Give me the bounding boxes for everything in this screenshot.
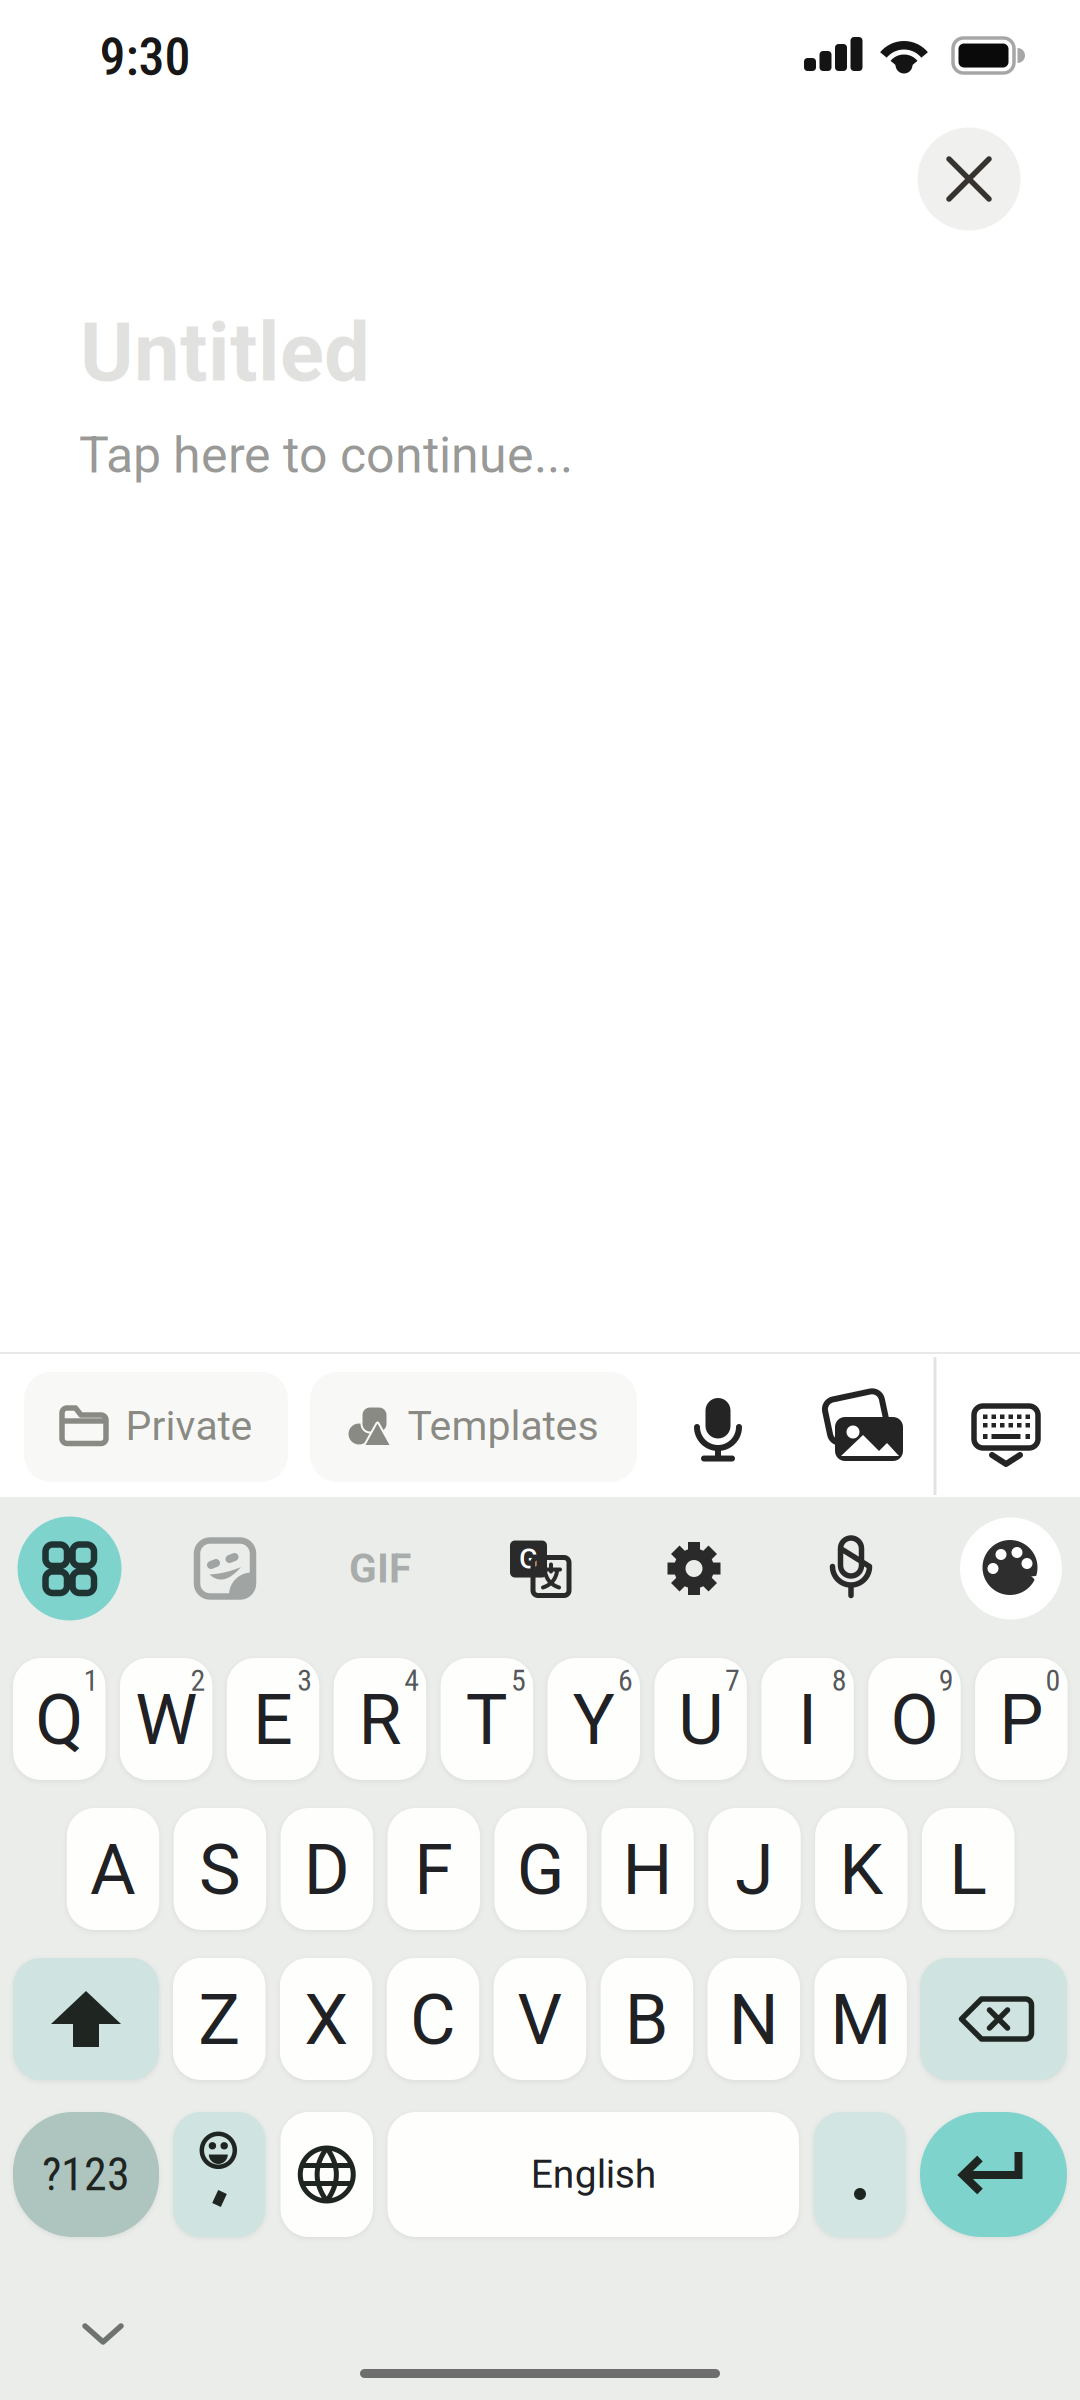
button[interactable]: S [174, 1808, 266, 1930]
button[interactable]: Z [173, 1958, 265, 2080]
button[interactable] [670, 1373, 766, 1483]
staticText: T [466, 1679, 508, 1761]
button[interactable] [920, 2112, 1067, 2237]
staticText: 0 [1046, 1663, 1061, 1698]
staticText: GIF [349, 1545, 411, 1592]
button[interactable]: X [280, 1958, 372, 2080]
staticText: A [90, 1829, 136, 1911]
button[interactable]: R [334, 1658, 426, 1780]
staticText: 3 [297, 1663, 312, 1698]
button[interactable] [956, 1381, 1056, 1491]
button[interactable] [280, 2112, 373, 2237]
staticText: Z [198, 1979, 240, 2061]
staticText: N [729, 1979, 779, 2061]
staticText: 1 [83, 1663, 98, 1698]
button[interactable]: U [654, 1658, 747, 1780]
staticText: M [830, 1979, 891, 2061]
button[interactable] [813, 2112, 906, 2237]
button[interactable] [814, 1378, 924, 1488]
button[interactable]: T [441, 1658, 533, 1780]
button[interactable]: C [387, 1958, 479, 2080]
button[interactable]: English [387, 2112, 799, 2237]
staticText: 8 [832, 1663, 847, 1698]
staticText: U [678, 1679, 723, 1761]
button[interactable]: H [601, 1808, 694, 1930]
button[interactable]: B [601, 1958, 693, 2080]
staticText: Untitled [80, 305, 370, 400]
button[interactable]: E [227, 1658, 319, 1780]
button[interactable]: M [814, 1958, 907, 2080]
staticText: 4 [404, 1663, 419, 1698]
button[interactable]: O [868, 1658, 961, 1780]
staticText: G [519, 1543, 538, 1575]
staticText: Tap here to continue... [79, 426, 573, 485]
button[interactable]: G [494, 1808, 587, 1930]
staticText: F [414, 1829, 453, 1911]
button[interactable]: P [975, 1658, 1068, 1780]
button[interactable]: Y [547, 1658, 640, 1780]
staticText: P [999, 1679, 1043, 1761]
staticText: Q [35, 1679, 83, 1761]
staticText: E [253, 1679, 293, 1761]
staticText: W [135, 1679, 197, 1761]
button[interactable]: Templates [310, 1372, 637, 1482]
button[interactable] [173, 2112, 265, 2237]
staticText: I [798, 1679, 817, 1761]
button[interactable]: V [494, 1958, 586, 2080]
button[interactable]: F [387, 1808, 480, 1930]
staticText: S [199, 1829, 241, 1911]
staticText: Y [573, 1679, 615, 1761]
button[interactable] [806, 1523, 896, 1613]
button[interactable]: G [493, 1523, 583, 1613]
button[interactable] [17, 1516, 121, 1620]
staticText: C [410, 1979, 456, 2061]
staticText: O [890, 1679, 938, 1761]
staticText: 2 [190, 1663, 205, 1698]
staticText: L [949, 1829, 987, 1911]
button[interactable]: K [815, 1808, 908, 1930]
staticText: 9 [939, 1663, 954, 1698]
button[interactable] [180, 1523, 270, 1613]
staticText: 6 [618, 1663, 633, 1698]
button[interactable]: W [120, 1658, 212, 1780]
button[interactable] [649, 1523, 739, 1613]
staticText: R [358, 1679, 401, 1761]
staticText: B [625, 1979, 669, 2061]
staticText: H [622, 1829, 672, 1911]
staticText: D [304, 1829, 350, 1911]
staticText: 5 [511, 1663, 526, 1698]
button[interactable]: GIF [315, 1523, 445, 1613]
button[interactable]: Q [13, 1658, 105, 1780]
staticText: Templates [407, 1402, 598, 1450]
button[interactable]: J [708, 1808, 801, 1930]
staticText: V [517, 1979, 562, 2061]
staticText: X [304, 1979, 348, 2061]
button[interactable]: D [281, 1808, 373, 1930]
staticText: Private [125, 1402, 252, 1450]
button[interactable]: N [707, 1958, 800, 2080]
button[interactable] [960, 1517, 1062, 1619]
staticText: English [531, 2152, 656, 2197]
staticText: K [839, 1829, 883, 1911]
button[interactable]: L [922, 1808, 1014, 1930]
button[interactable]: ?123 [13, 2112, 159, 2237]
staticText: ?123 [42, 2147, 130, 2201]
staticText: 9:30 [99, 26, 190, 87]
staticText: G [517, 1829, 565, 1911]
button[interactable] [920, 1958, 1067, 2080]
staticText: J [735, 1829, 774, 1911]
button[interactable]: A [67, 1808, 159, 1930]
button[interactable] [64, 2300, 142, 2366]
button[interactable] [917, 127, 1020, 230]
button[interactable] [13, 1958, 159, 2080]
button[interactable]: I [761, 1658, 854, 1780]
button[interactable]: Private [24, 1372, 288, 1482]
staticText: 7 [725, 1663, 740, 1698]
